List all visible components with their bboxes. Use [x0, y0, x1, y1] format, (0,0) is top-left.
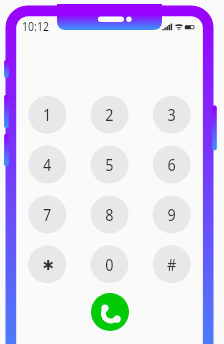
button[interactable]: Key 2: [91, 96, 129, 134]
button[interactable]: Key #: [153, 245, 191, 283]
button[interactable]: Key 3: [153, 96, 191, 134]
button[interactable]: Key 1: [28, 96, 66, 134]
button[interactable]: Key *: [28, 245, 66, 283]
button[interactable]: Key 8: [91, 196, 129, 234]
button[interactable]: Key 9: [153, 196, 191, 234]
button[interactable]: Call: [91, 293, 129, 331]
button[interactable]: Key 5: [91, 146, 129, 184]
button[interactable]: Key 0: [91, 245, 129, 283]
button[interactable]: Key 4: [28, 146, 66, 184]
button[interactable]: Key 7: [28, 196, 66, 234]
button[interactable]: Key 6: [153, 146, 191, 184]
